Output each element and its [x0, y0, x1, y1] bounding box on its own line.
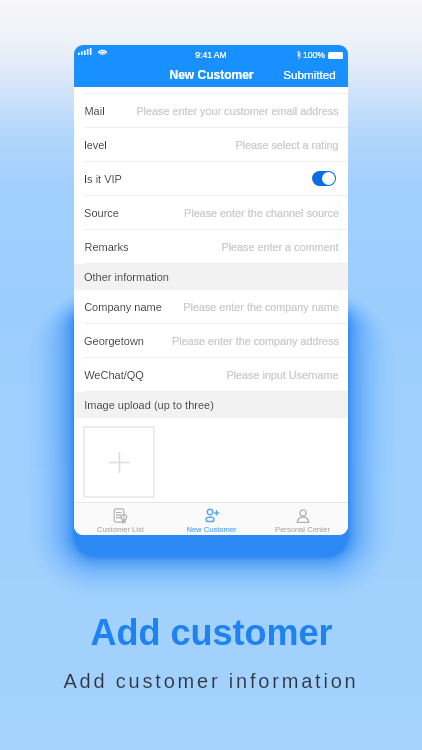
staticText: Image upload (up to three): [84, 399, 214, 411]
button[interactable]: Personal Center: [257, 503, 348, 535]
staticText: Please enter the company address: [172, 335, 339, 347]
staticText: New Customer: [186, 525, 237, 533]
button[interactable]: Add image: [84, 427, 154, 497]
staticText: Please enter the channel source: [184, 207, 339, 219]
button[interactable]: Company name: [74, 290, 348, 324]
button[interactable]: Georgetown: [74, 324, 348, 358]
other: VIP toggle: [312, 171, 336, 186]
button[interactable]: level: [74, 128, 348, 162]
button[interactable]: Mail: [74, 94, 348, 128]
staticText: Mail: [84, 105, 105, 117]
staticText: Please enter your customer email address: [136, 105, 339, 117]
staticText: level: [84, 139, 107, 151]
staticText: Please select a rating: [235, 139, 339, 151]
staticText: Please enter a comment: [221, 241, 339, 253]
staticText: Georgetown: [84, 335, 144, 347]
staticText: 100%: [303, 50, 325, 60]
staticText: Personal Center: [275, 525, 330, 533]
button[interactable]: Source: [74, 196, 348, 230]
staticText: Please input Username: [226, 369, 339, 381]
staticText: Remarks: [84, 241, 129, 253]
staticText: Company name: [84, 301, 162, 313]
staticText: WeChat/QQ: [84, 369, 144, 381]
button[interactable]: WeChat/QQ: [74, 358, 348, 392]
button[interactable]: Remarks: [74, 230, 348, 264]
button[interactable]: Is it VIP: [74, 162, 348, 196]
button[interactable]: New Customer: [166, 503, 257, 535]
staticText: 9:41 AM: [195, 50, 227, 60]
staticText: Customer List: [97, 525, 144, 533]
staticText: Submitted: [283, 68, 336, 81]
button[interactable]: Customer List: [74, 503, 166, 535]
staticText: Please enter the company name: [183, 301, 339, 313]
button[interactable]: Submitted: [276, 65, 348, 84]
staticText: New Customer: [169, 68, 254, 81]
staticText: Is it VIP: [84, 173, 122, 185]
staticText: Other information: [84, 271, 169, 283]
staticText: Add customer: [90, 612, 333, 652]
staticText: Source: [84, 207, 119, 219]
staticText: Add customer information: [63, 670, 359, 692]
